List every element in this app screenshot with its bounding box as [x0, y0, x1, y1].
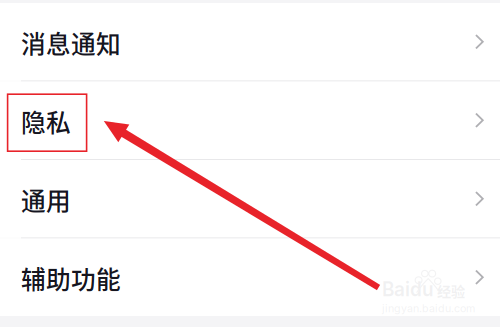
staticText: 经验	[437, 280, 465, 301]
staticText: 消息通知	[21, 25, 121, 61]
button[interactable]: 隐私	[0, 81, 500, 159]
button[interactable]: 通用	[0, 160, 500, 237]
staticText: 通用	[21, 182, 71, 218]
staticText: 辅助功能	[21, 260, 121, 296]
button[interactable]: 消息通知	[0, 3, 500, 80]
staticText: jingyan.baidu.com	[382, 302, 475, 315]
staticText: Baidu	[382, 278, 434, 301]
staticText: 隐私	[21, 103, 71, 139]
button[interactable]: 辅助功能	[0, 238, 500, 316]
